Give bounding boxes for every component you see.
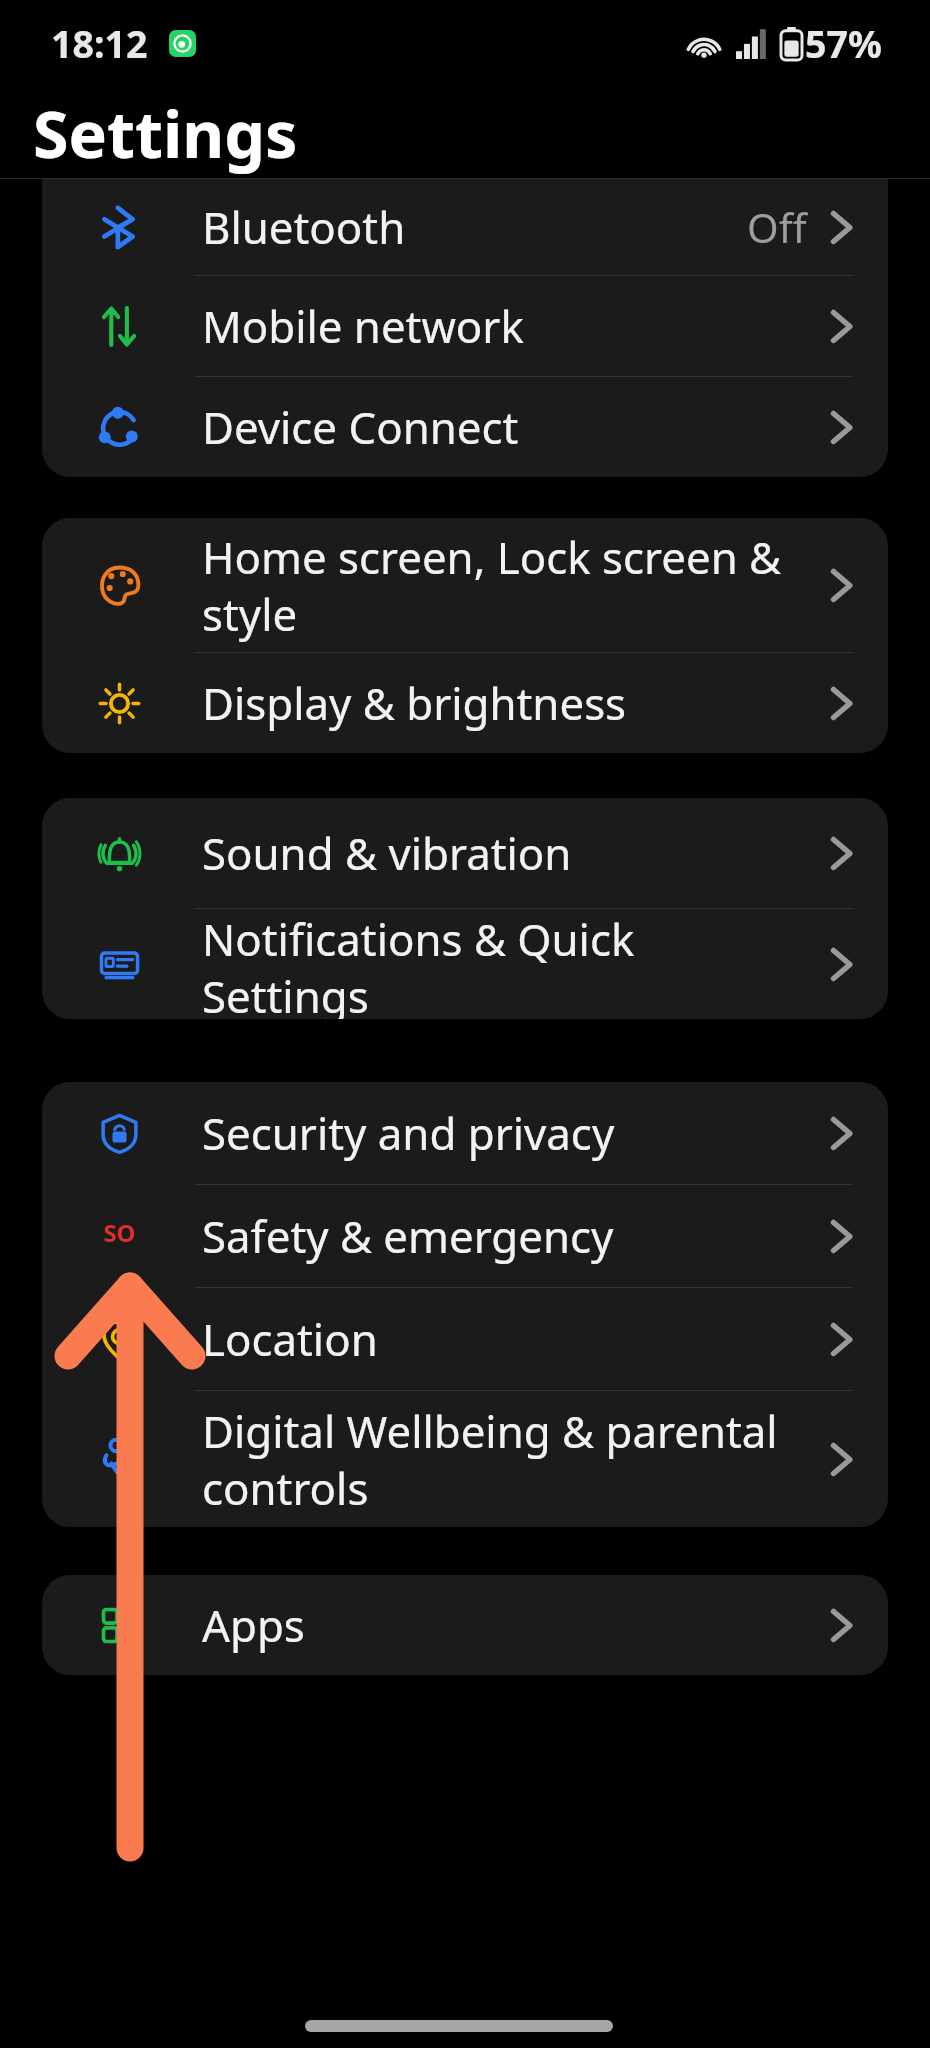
staticText: Mobile network [202, 296, 807, 356]
staticText: Security and privacy [202, 1103, 807, 1163]
button[interactable]: SOS [42, 1185, 888, 1287]
button[interactable]: Display & brightness [42, 653, 888, 753]
staticText: Off [747, 200, 807, 255]
button[interactable]: Mobile network [42, 276, 888, 376]
staticText: Apps [202, 1595, 807, 1655]
button[interactable]: Bluetooth [42, 179, 888, 275]
button[interactable]: Digital Wellbeing & parental controls [42, 1391, 888, 1527]
button[interactable]: Sound & vibration [42, 798, 888, 908]
button[interactable]: Location [42, 1288, 888, 1390]
staticText: Bluetooth [202, 197, 723, 257]
staticText: 18:12 [51, 18, 148, 69]
staticText: 57% [805, 18, 882, 69]
button[interactable]: Apps [42, 1575, 888, 1675]
staticText: Sound & vibration [202, 823, 807, 883]
staticText: Digital Wellbeing & parental controls [202, 1401, 807, 1518]
staticText: Device Connect [202, 397, 807, 457]
staticText: Location [202, 1309, 807, 1369]
staticText: Notifications & Quick Settings [202, 909, 807, 1019]
button[interactable]: Security and privacy [42, 1082, 888, 1184]
button[interactable]: Notifications & Quick Settings [42, 909, 888, 1019]
staticText: Home screen, Lock screen & style [202, 527, 807, 644]
staticText: SOS [99, 1216, 140, 1257]
button[interactable]: Home screen, Lock screen & style [42, 518, 888, 652]
staticText: Display & brightness [202, 673, 807, 733]
staticText: Safety & emergency [202, 1206, 807, 1266]
button[interactable]: Device Connect [42, 377, 888, 477]
staticText: Settings [33, 89, 298, 177]
